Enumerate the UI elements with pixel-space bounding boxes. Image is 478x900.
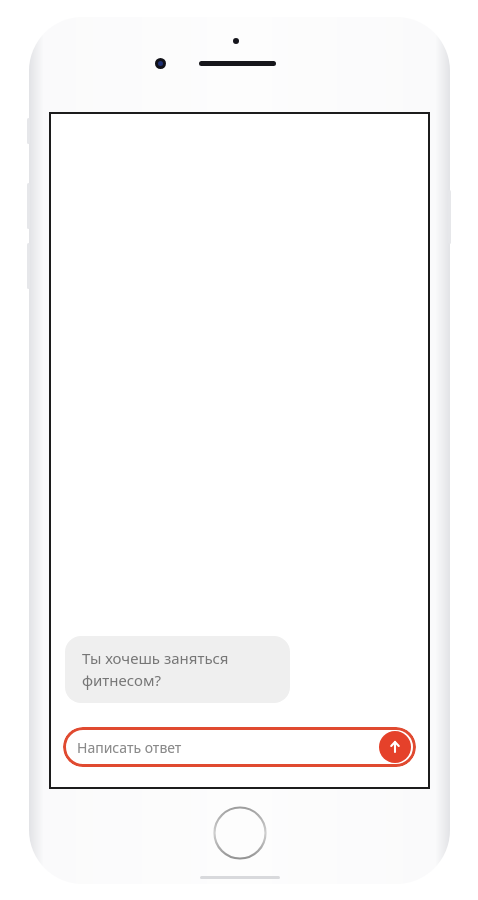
button[interactable]: Ты хочешь заняться фитнесом? (65, 636, 290, 703)
button[interactable]: Home (213, 806, 267, 860)
staticText: Написать ответ (77, 738, 182, 757)
button[interactable]: Send (379, 731, 411, 763)
button[interactable]: Написать ответ (63, 727, 416, 767)
staticText: Ты хочешь заняться фитнесом? (82, 648, 229, 691)
